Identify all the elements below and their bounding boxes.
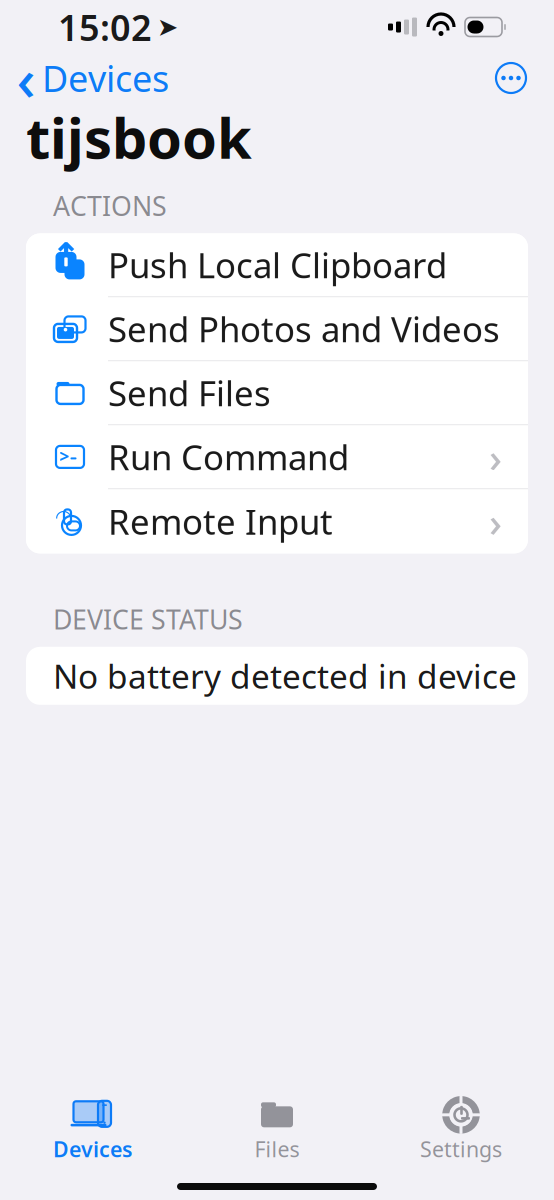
staticText: ➤ — [157, 13, 178, 41]
staticText: Send Photos and Videos — [108, 306, 500, 352]
staticText: Run Command — [108, 434, 349, 480]
staticText: Devices — [53, 1135, 133, 1163]
staticText: Settings — [420, 1135, 502, 1163]
button[interactable]: More options — [487, 54, 535, 102]
staticText: 15:02 — [58, 3, 152, 51]
staticText: ACTIONS — [53, 188, 167, 223]
staticText: ‹ — [16, 39, 35, 117]
staticText: Devices — [42, 54, 169, 102]
staticText: Remote Input — [108, 498, 333, 544]
staticText: Send Files — [108, 370, 271, 416]
button[interactable]: ‹ — [0, 54, 179, 102]
staticText: ↑ — [51, 235, 81, 276]
button[interactable]: Send Photos and Videos — [26, 297, 528, 361]
button[interactable]: Send Files — [26, 361, 528, 425]
staticText: Push Local Clipboard — [108, 242, 447, 288]
button[interactable]: Devices — [1, 1100, 185, 1162]
button[interactable]: ◠ — [26, 489, 528, 553]
staticText: > — [59, 444, 69, 467]
staticText: ◠ — [56, 505, 71, 528]
staticText: › — [489, 430, 502, 483]
button[interactable]: > — [26, 425, 528, 489]
button[interactable]: Settings — [369, 1100, 553, 1162]
staticText: tijsbook — [26, 100, 252, 174]
button[interactable]: Files — [185, 1100, 369, 1162]
button[interactable]: ↑ — [26, 233, 528, 297]
staticText: › — [489, 495, 502, 548]
staticText: Files — [254, 1135, 299, 1163]
staticText: DEVICE STATUS — [53, 601, 243, 637]
staticText: No battery detected in device — [53, 654, 517, 698]
